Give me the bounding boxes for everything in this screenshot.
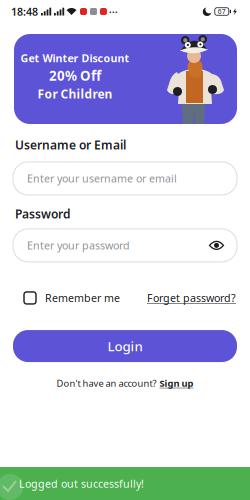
staticText: Forget password? xyxy=(147,291,236,305)
staticText: Password xyxy=(15,206,71,222)
staticText: 67 xyxy=(218,7,226,16)
staticText: Username or Email xyxy=(15,137,126,153)
button[interactable]: Show password xyxy=(209,240,237,251)
staticText: Don't have an account? xyxy=(56,377,156,389)
button[interactable]: Remember me xyxy=(24,291,120,305)
staticText: ··· xyxy=(109,5,118,18)
staticText: Enter your username or email xyxy=(27,171,177,186)
staticText: 20% Off xyxy=(49,67,101,84)
staticText: Logged out successfully! xyxy=(19,476,144,491)
staticText: Enter your password xyxy=(27,238,130,252)
staticText: Sign up xyxy=(159,377,193,389)
staticText: 18:48 xyxy=(11,4,38,19)
button[interactable]: Forget password? xyxy=(147,291,236,305)
staticText: Get Winter Discount xyxy=(20,51,129,65)
staticText: For Children xyxy=(37,86,112,102)
button[interactable]: Login xyxy=(13,330,237,362)
button[interactable]: Sign up xyxy=(159,377,193,389)
staticText: Login xyxy=(107,337,142,355)
staticText: Remember me xyxy=(45,291,120,305)
